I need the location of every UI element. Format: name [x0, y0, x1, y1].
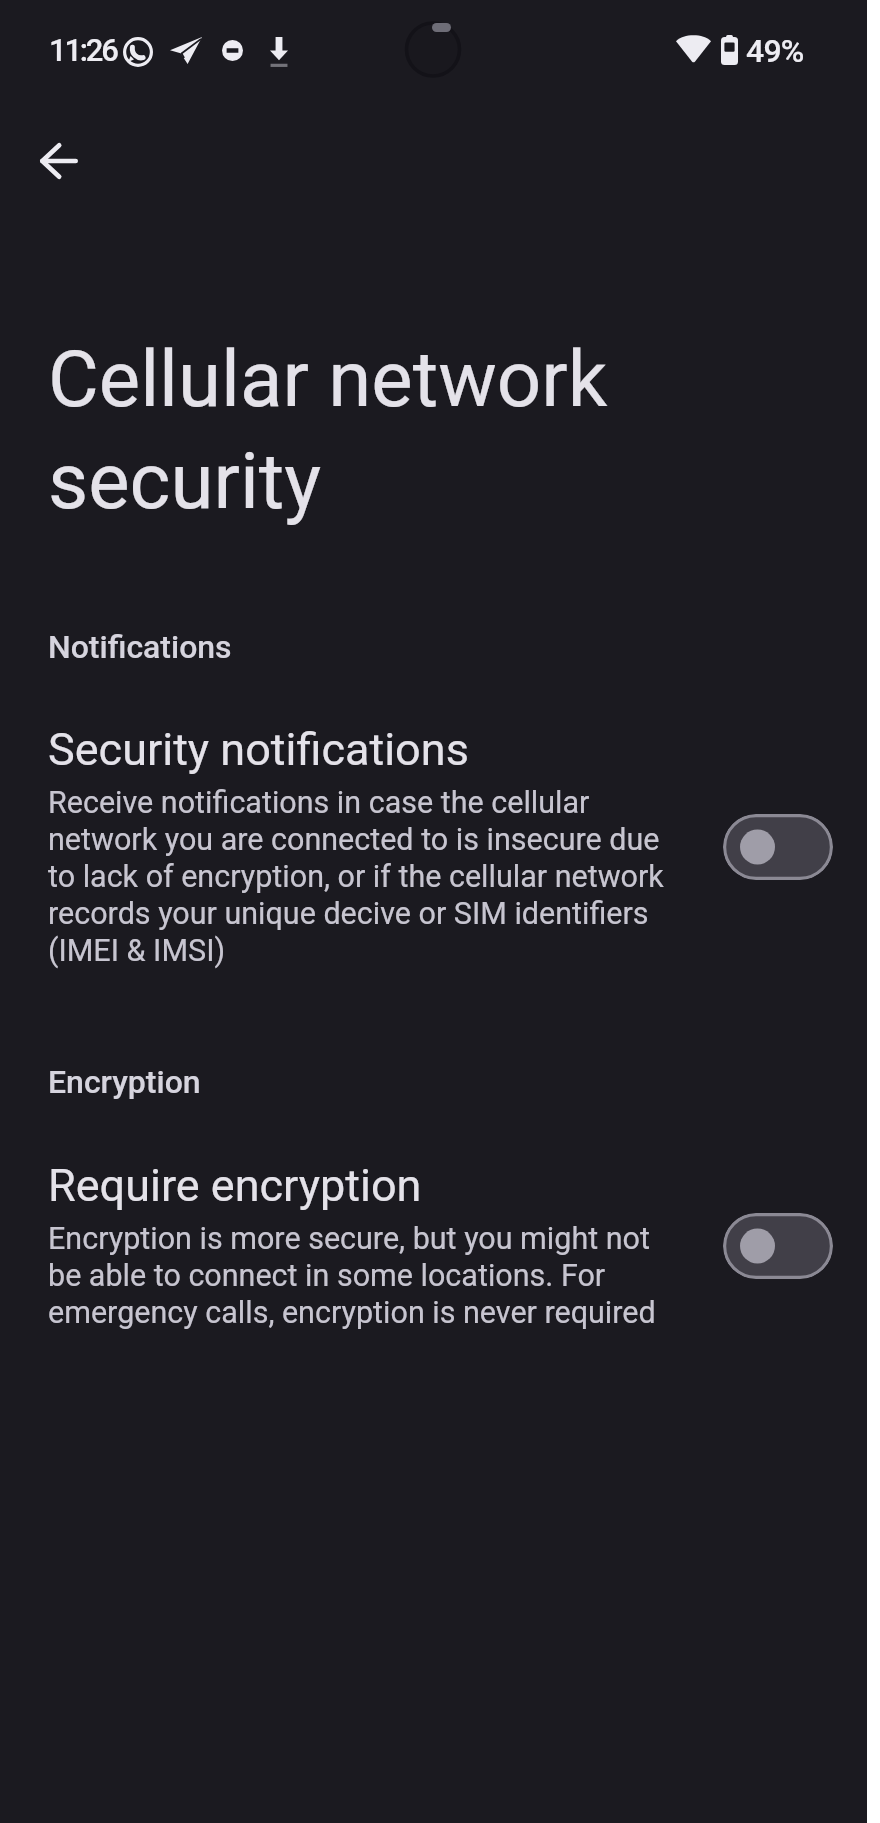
staticText: Encryption is more secure, but you might… [48, 1219, 678, 1330]
staticText: 11:26 [49, 32, 117, 68]
staticText: Notifications [48, 628, 232, 666]
staticText: Encryption [48, 1063, 201, 1101]
button[interactable]: Security notifications, off [723, 814, 833, 880]
staticText: 49% [746, 32, 804, 70]
button[interactable]: Back [31, 133, 87, 189]
staticText: Security notifications [48, 722, 469, 776]
staticText: Receive notifications in case the cellul… [48, 783, 678, 968]
button[interactable]: Require encryption [48, 1158, 678, 1330]
button[interactable]: Require encryption, off [723, 1213, 833, 1279]
staticText: Require encryption [48, 1158, 422, 1212]
button[interactable]: Security notifications [48, 722, 678, 968]
staticText: Cellular network security [48, 325, 608, 529]
